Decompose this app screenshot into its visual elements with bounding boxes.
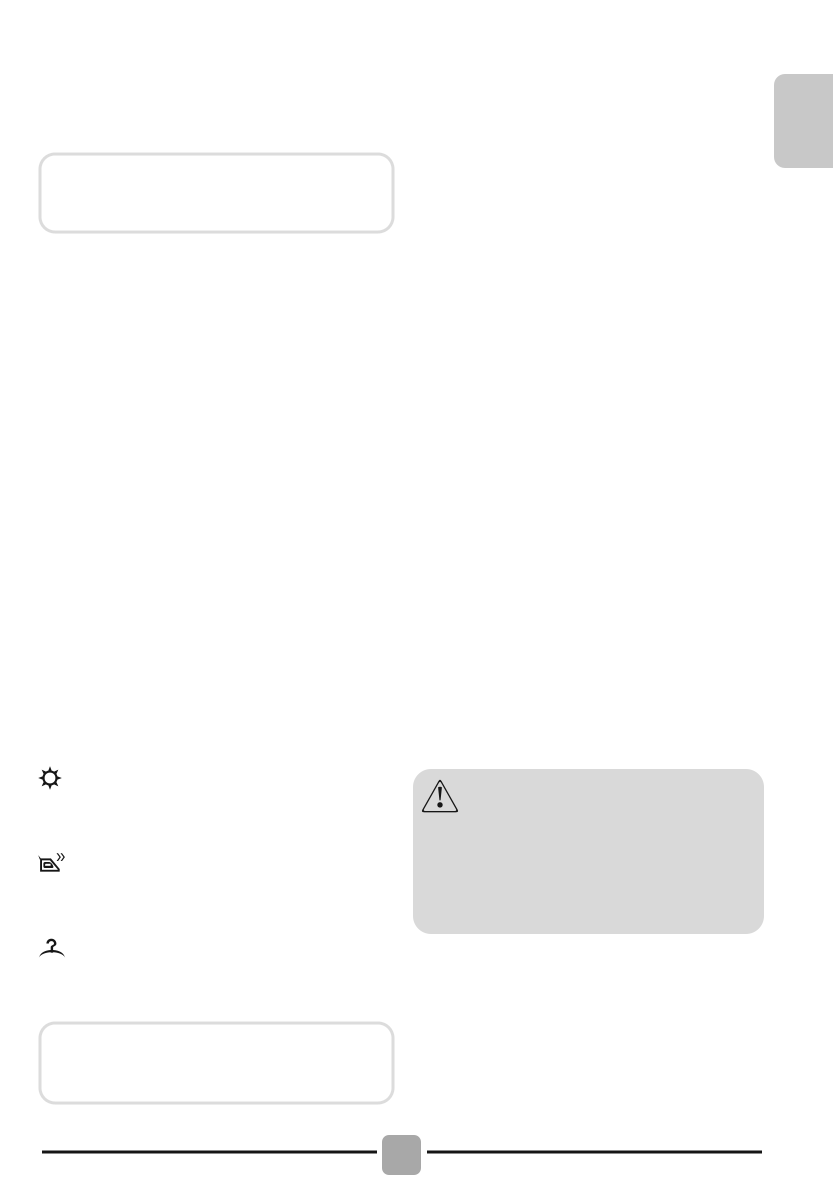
button[interactable]: Tumble dry <box>38 766 62 790</box>
button[interactable]: Section tab <box>774 74 833 168</box>
button[interactable]: Iron with steam <box>38 852 65 874</box>
button[interactable]: Note <box>38 152 394 233</box>
button[interactable]: Caution <box>413 769 764 934</box>
button[interactable]: Note <box>38 1021 394 1104</box>
button[interactable]: Hang to dry <box>38 939 65 958</box>
